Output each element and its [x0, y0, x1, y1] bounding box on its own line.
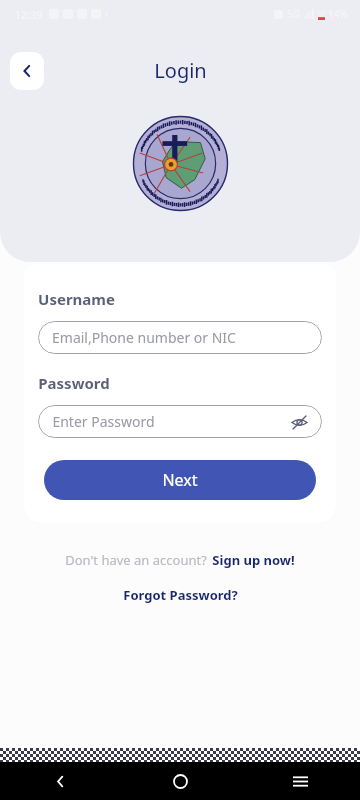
button[interactable]: Sign up now!	[212, 551, 295, 569]
button[interactable]: Back	[10, 52, 44, 90]
staticText: Don't have an account?	[65, 551, 207, 569]
staticText: Enter Password	[52, 412, 155, 431]
button[interactable]: Recent apps	[240, 762, 360, 800]
staticText: Email,Phone number or NIC	[52, 328, 236, 347]
button[interactable]: Enter Password	[38, 405, 322, 438]
staticText: Sign up now!	[212, 551, 295, 569]
staticText: Password	[38, 373, 110, 393]
staticText: Next	[162, 469, 198, 491]
staticText: Forgot Password?	[123, 586, 238, 604]
button[interactable]: Email,Phone number or NIC	[38, 321, 322, 354]
button[interactable]: Home	[120, 762, 240, 800]
button[interactable]: Forgot Password?	[123, 586, 238, 604]
staticText: Login	[154, 57, 207, 84]
button[interactable]: Back	[0, 762, 120, 800]
button[interactable]: Next	[44, 460, 316, 500]
staticText: Username	[38, 289, 115, 309]
button[interactable]: Toggle password visibility	[288, 411, 310, 433]
